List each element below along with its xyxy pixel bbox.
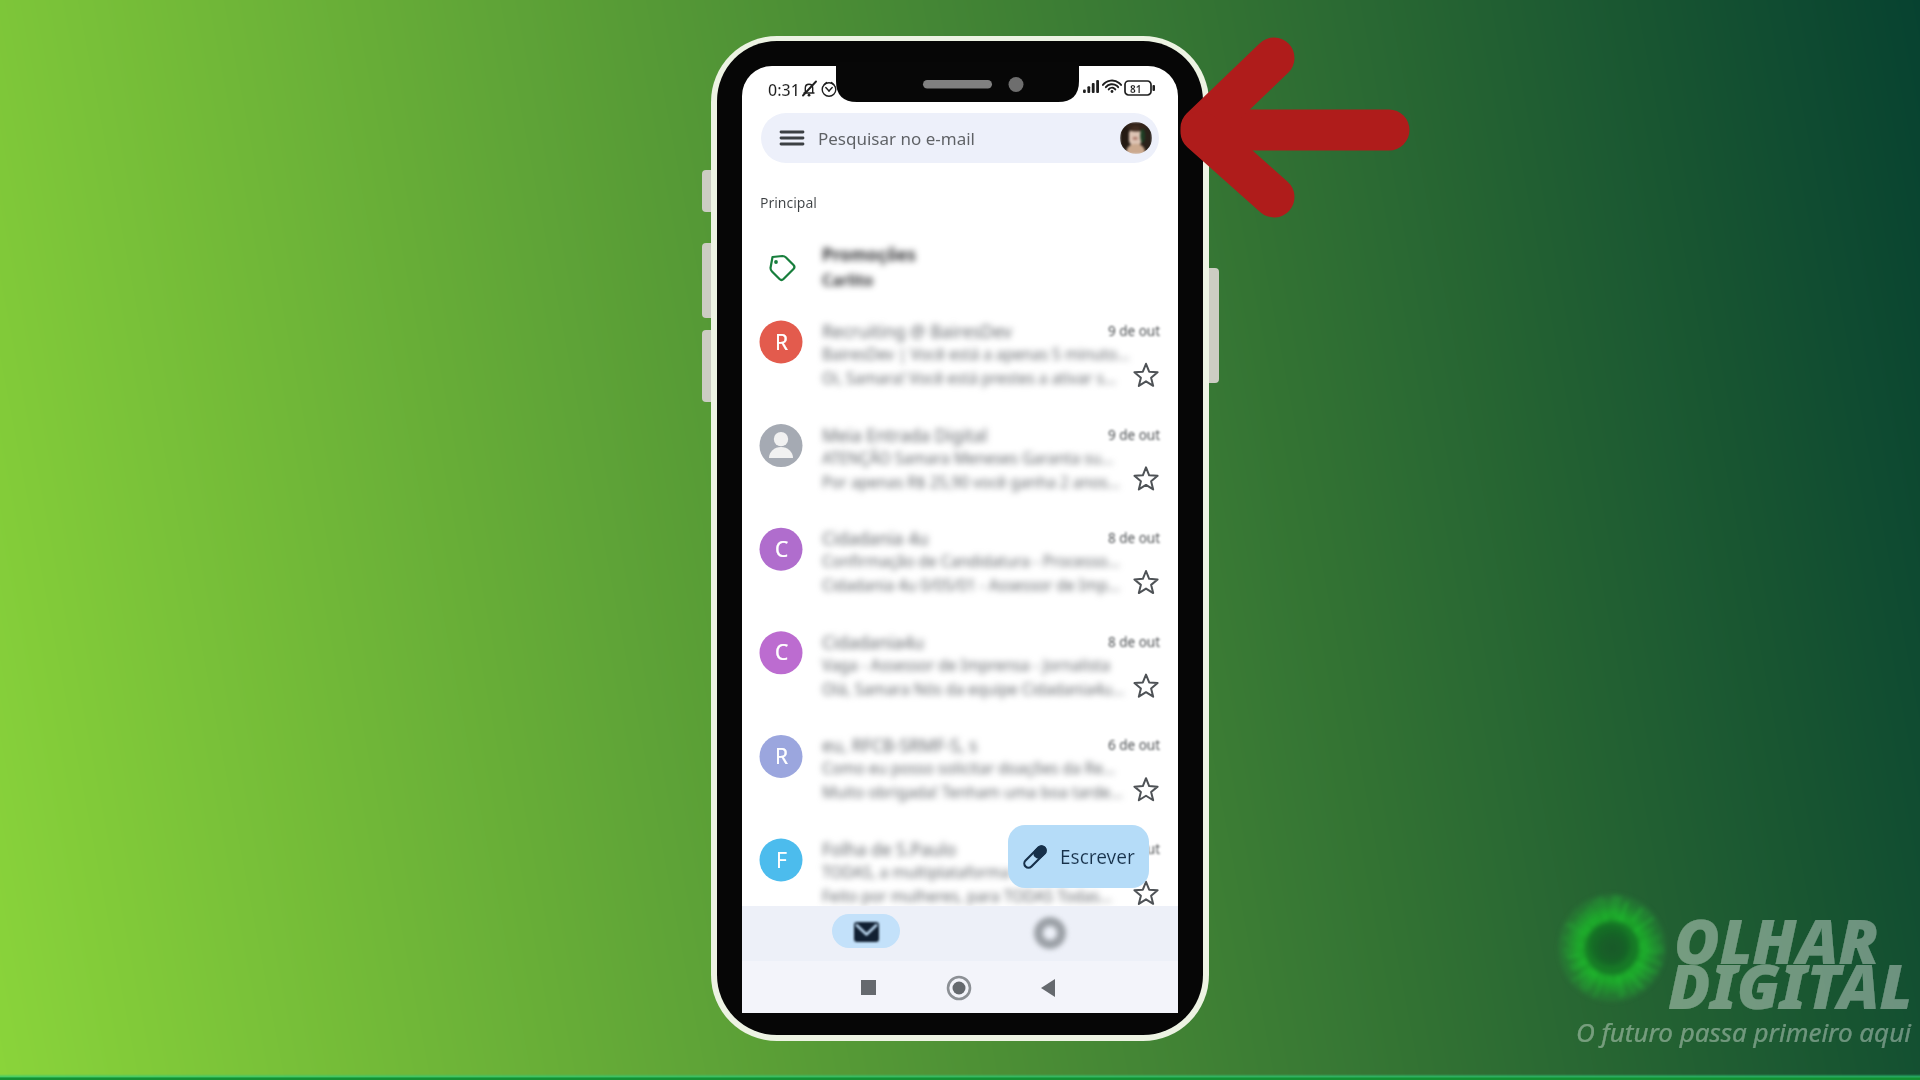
button[interactable]: Account — [1120, 122, 1152, 154]
staticText: Oi, Samara! Você está prestes a ativar s… — [822, 368, 1117, 389]
button[interactable]: Home — [938, 968, 980, 1010]
staticText: Pesquisar no e-mail — [818, 127, 975, 150]
button[interactable] — [742, 228, 1178, 302]
button[interactable] — [742, 818, 1178, 918]
staticText: Cidadania 4u — [822, 526, 929, 550]
staticText: 5 de out — [1108, 840, 1161, 858]
staticText: 9 de out — [1108, 426, 1161, 444]
button[interactable] — [742, 300, 1178, 400]
button[interactable]: Mail — [832, 914, 900, 948]
staticText: C — [775, 535, 789, 564]
staticText: 0:31 — [768, 79, 800, 101]
staticText: 81 — [1130, 82, 1142, 96]
staticText: Como eu posso solicitar doações da Re... — [822, 758, 1116, 779]
staticText: Carlito — [822, 270, 874, 291]
button[interactable]: Open navigation menu — [761, 113, 1159, 163]
staticText: Feito por mulheres, para TODAS Todas... — [822, 886, 1112, 907]
staticText: Confirmação de Candidatura - Processo... — [822, 551, 1120, 572]
staticText: Escrever — [1060, 844, 1135, 870]
staticText: DIGITAL — [1668, 943, 1913, 1027]
button[interactable]: Escrever — [1008, 825, 1149, 888]
staticText: Principal — [760, 193, 817, 212]
staticText: Cidadania4u — [822, 630, 925, 654]
staticText: eu, RFCB-SRMF-S, s — [822, 733, 978, 757]
button[interactable]: Recents — [847, 968, 889, 1010]
staticText: 6 de out — [1108, 736, 1161, 754]
button[interactable]: Open navigation menu — [780, 126, 804, 150]
staticText: ATENÇÃO Samara Meneses Garanta su... — [822, 448, 1114, 469]
staticText: Por apenas R$ 25,90 você ganha 2 anos... — [822, 472, 1120, 493]
staticText: OLHAR — [1674, 898, 1879, 982]
staticText: C — [775, 638, 789, 667]
staticText: Muito obrigada! Tenham uma boa tarde... — [822, 782, 1123, 803]
button[interactable] — [742, 611, 1178, 711]
staticText: 9 de out — [1108, 322, 1161, 340]
staticText: F — [776, 846, 787, 875]
staticText: Cidadania 4u 0/05/01 - Assessor de Imp..… — [822, 575, 1121, 596]
staticText: 8 de out — [1108, 633, 1161, 651]
staticText: Vaga - Assessor de Imprensa - Jornalista — [822, 655, 1111, 676]
staticText: Meia Entrada Digital — [822, 423, 988, 447]
staticText: R — [775, 742, 789, 771]
staticText: Folha de S.Paulo — [822, 837, 957, 861]
button[interactable] — [742, 404, 1178, 504]
button[interactable] — [742, 507, 1178, 607]
staticText: Olá, Samara Nós da equipe Cidadania4u... — [822, 679, 1125, 700]
staticText: O futuro passa primeiro aqui — [1576, 1014, 1911, 1049]
button[interactable]: Back — [1027, 968, 1069, 1010]
button[interactable]: Meet — [1025, 910, 1077, 952]
staticText: TODAS, a multiplataforma ... — [822, 862, 1027, 883]
staticText: BairesDev | Você está a apenas 5 minuto.… — [822, 344, 1130, 365]
staticText: Recruiting @ BairesDev — [822, 319, 1012, 343]
staticText: R — [775, 328, 789, 357]
button[interactable] — [742, 714, 1178, 814]
staticText: Promoções — [822, 243, 916, 266]
staticText: 8 de out — [1108, 529, 1161, 547]
